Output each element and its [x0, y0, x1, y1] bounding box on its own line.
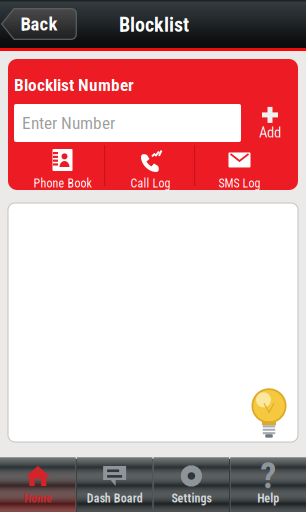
button[interactable]: Add [246, 105, 294, 143]
staticText: Blocklist [119, 13, 189, 37]
button[interactable]: ? [230, 459, 306, 512]
button[interactable]: Phone Book [15, 148, 109, 194]
button[interactable]: SMS Log [189, 148, 289, 194]
button[interactable]: Call Log [106, 148, 194, 194]
staticText: Enter Number [22, 113, 115, 133]
staticText: Settings [171, 491, 211, 506]
staticText: Call Log [130, 176, 170, 191]
staticText: Phone Book [33, 176, 91, 191]
staticText: ? [260, 455, 276, 497]
staticText: Add [259, 124, 281, 141]
staticText: Home [24, 491, 52, 506]
staticText: SMS Log [218, 176, 260, 191]
button[interactable]: Home [0, 459, 76, 512]
button[interactable]: Settings [153, 459, 229, 512]
staticText: Blocklist Number [14, 75, 134, 95]
button[interactable]: Enter Number [14, 104, 241, 142]
button[interactable]: Back [1, 8, 77, 40]
staticText: Back [20, 13, 57, 35]
staticText: Dash Board [87, 491, 143, 506]
button[interactable]: Dash Board [77, 459, 153, 512]
staticText: Help [257, 491, 279, 506]
